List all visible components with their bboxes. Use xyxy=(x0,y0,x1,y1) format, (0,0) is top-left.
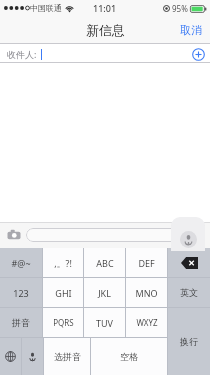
button[interactable]: Dictation xyxy=(171,217,205,251)
button[interactable]: 拼音 xyxy=(0,308,42,337)
staticText: 英文 xyxy=(180,287,198,298)
button[interactable]: MNO xyxy=(126,278,167,307)
button[interactable]: WXYZ xyxy=(126,308,167,337)
button[interactable]: 英文 xyxy=(168,278,210,307)
staticText: #@~ xyxy=(11,257,31,269)
staticText: JKL xyxy=(98,287,111,299)
button[interactable]: 选拼音 xyxy=(44,338,90,375)
staticText: 拼音 xyxy=(12,317,30,328)
button[interactable]: Camera xyxy=(5,226,23,244)
staticText: MNO xyxy=(135,287,158,299)
button[interactable]: 取消 xyxy=(172,18,210,42)
button[interactable]: 空格 xyxy=(91,338,167,375)
button[interactable]: DEF xyxy=(126,248,167,277)
staticText: DEF xyxy=(138,257,155,269)
staticText: 空格 xyxy=(120,351,138,362)
button[interactable]: PQRS xyxy=(43,308,83,337)
staticText: 取消 xyxy=(180,23,202,37)
button[interactable]: Switch keyboard xyxy=(0,338,21,375)
staticText: 95% xyxy=(172,3,188,14)
button[interactable]: 换行 xyxy=(168,308,210,375)
staticText: TUV xyxy=(96,317,113,329)
staticText: 新信息 xyxy=(86,22,125,38)
button[interactable]: GHI xyxy=(43,278,83,307)
button[interactable]: 123 xyxy=(0,278,42,307)
button[interactable]: Delete xyxy=(168,248,210,277)
staticText: 中国联通 xyxy=(30,3,62,13)
button[interactable]: TUV xyxy=(84,308,125,337)
button[interactable]: Dictation xyxy=(22,338,43,375)
staticText: 收件人: xyxy=(7,48,37,60)
staticText: 11:01 xyxy=(93,2,117,14)
button[interactable] xyxy=(26,228,185,242)
button[interactable]: JKL xyxy=(84,278,125,307)
staticText: GHI xyxy=(55,287,72,299)
staticText: WXYZ xyxy=(136,317,158,328)
button[interactable]: Add contact xyxy=(190,46,206,62)
staticText: 换行 xyxy=(180,336,198,347)
staticText: 选拼音 xyxy=(54,351,81,362)
button[interactable]: #@~ xyxy=(0,248,42,277)
staticText: 123 xyxy=(13,287,29,299)
staticText: ,。?! xyxy=(54,257,72,269)
button[interactable]: ,。?! xyxy=(43,248,83,277)
button[interactable]: ABC xyxy=(84,248,125,277)
staticText: PQRS xyxy=(53,317,74,328)
staticText: ABC xyxy=(96,257,114,269)
